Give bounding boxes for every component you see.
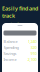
button[interactable]: Spending (3, 44, 36, 50)
staticText: 910 (30, 51, 36, 56)
button[interactable]: Income (3, 56, 36, 62)
staticText: 320 (30, 45, 36, 50)
button[interactable]: Savings (3, 50, 36, 56)
staticText: Income (3, 57, 16, 62)
staticText: Savings (3, 51, 16, 56)
staticText: 2,100 (27, 57, 36, 62)
staticText: Spending (3, 45, 18, 50)
staticText: Balance (3, 39, 17, 44)
staticText: 1,240 (27, 39, 36, 44)
staticText: Easily find and track (2, 5, 38, 19)
button[interactable]: Balance (3, 38, 36, 44)
staticText: in Stats (10, 21, 29, 28)
